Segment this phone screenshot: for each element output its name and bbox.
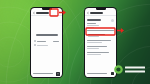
button[interactable]: Profile <box>111 19 114 22</box>
button[interactable] <box>87 46 114 52</box>
button[interactable] <box>88 34 113 37</box>
button[interactable] <box>87 52 114 58</box>
button[interactable] <box>34 40 59 42</box>
button[interactable]: Chat assistant <box>111 72 114 75</box>
button[interactable]: Highlighted menu button <box>50 9 58 16</box>
button[interactable] <box>87 11 114 15</box>
button[interactable]: Ciudad Digital logo <box>114 65 145 74</box>
button[interactable]: Chat assistant <box>56 72 60 76</box>
button[interactable] <box>34 44 59 46</box>
button[interactable] <box>87 40 114 46</box>
button[interactable]: Highlighted list item <box>86 28 115 35</box>
button[interactable] <box>33 11 60 15</box>
